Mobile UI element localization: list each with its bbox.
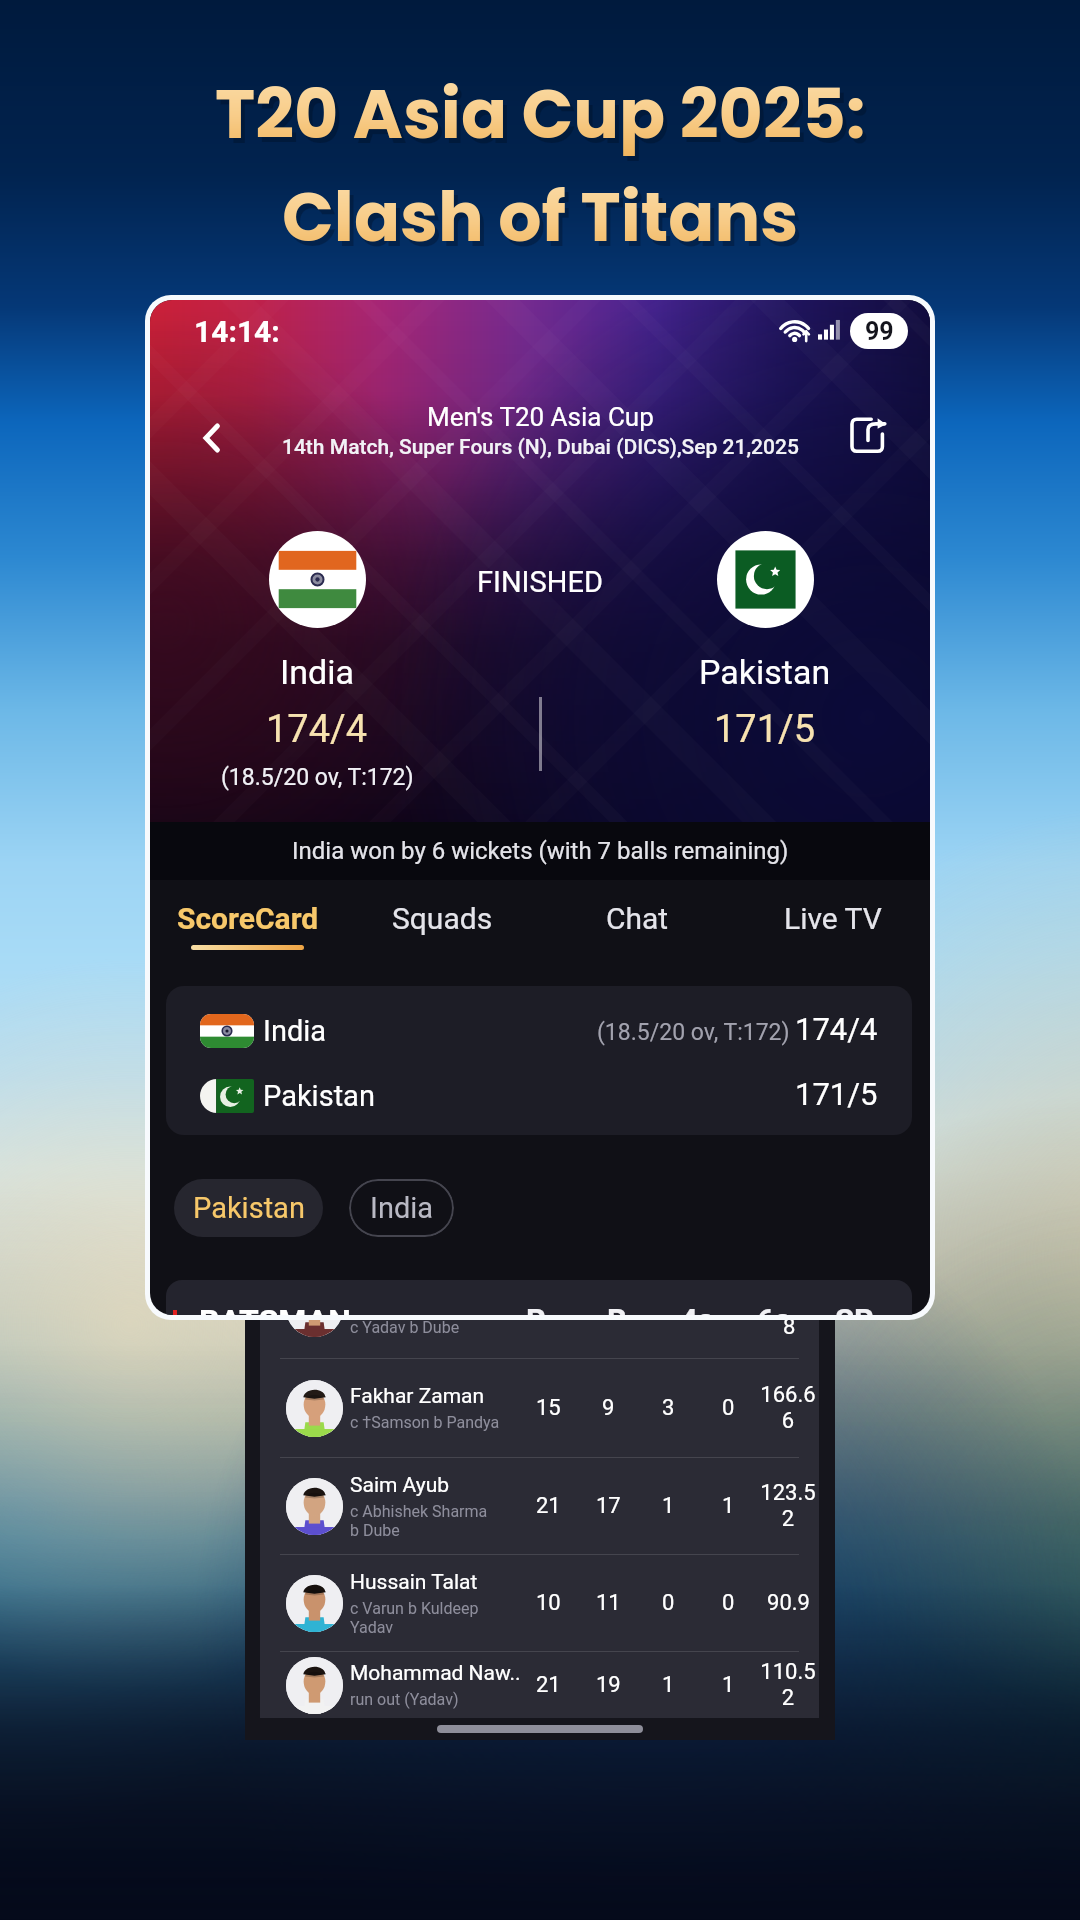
staticText: R xyxy=(526,1302,546,1315)
button[interactable]: Squads xyxy=(345,880,540,965)
button[interactable]: India xyxy=(349,1179,454,1237)
staticText: Hussain Talat xyxy=(350,1570,478,1595)
staticText: 0 xyxy=(722,1590,735,1616)
staticText: Saim Ayub xyxy=(350,1473,450,1498)
staticText: 174/4 xyxy=(795,1011,878,1047)
staticText: India xyxy=(280,652,354,692)
staticText: 171/5 xyxy=(795,1076,878,1112)
button[interactable]: Live TV xyxy=(735,880,930,965)
staticText: T20 Asia Cup 2025: xyxy=(215,67,866,162)
staticText: Live TV xyxy=(784,901,882,936)
staticText: Men's T20 Asia Cup xyxy=(427,402,654,432)
staticText: 110.52 xyxy=(756,1659,820,1711)
staticText: 14:14: xyxy=(194,314,280,349)
staticText: SR xyxy=(835,1302,874,1315)
button[interactable]: Back xyxy=(186,412,238,464)
staticText: 17 xyxy=(596,1493,621,1519)
staticText: 4s xyxy=(680,1302,714,1315)
staticText: 90.9 xyxy=(767,1590,810,1616)
staticText: 11 xyxy=(596,1590,621,1616)
staticText: (18.5/20 ov, T:172) xyxy=(221,764,414,791)
staticText: India xyxy=(263,1014,327,1048)
staticText: Pakistan xyxy=(263,1079,375,1113)
button[interactable]: India xyxy=(166,986,912,1135)
staticText: Squads xyxy=(392,901,493,936)
staticText: 174/4 xyxy=(266,707,368,752)
staticText: FINISHED xyxy=(477,565,603,599)
button[interactable]: Pakistan xyxy=(174,1179,323,1237)
staticText: BATSMAN xyxy=(199,1302,351,1315)
button[interactable]: ScoreCard xyxy=(150,880,345,965)
button[interactable]: Share xyxy=(840,408,896,464)
staticText: T20 Asia Cup 2025: xyxy=(219,72,870,167)
staticText: Pakistan xyxy=(699,652,831,692)
staticText: 1 xyxy=(662,1493,675,1519)
staticText: Clash of Titans xyxy=(282,170,799,265)
staticText: (18.5/20 ov, T:172) xyxy=(597,1019,790,1046)
staticText: 14th Match, Super Fours (N), Dubai (DICS… xyxy=(282,435,799,460)
staticText: 3 xyxy=(662,1395,675,1421)
staticText: 19 xyxy=(596,1672,621,1698)
staticText: 123.52 xyxy=(756,1480,820,1532)
staticText: 1 xyxy=(662,1672,675,1698)
staticText: ScoreCard xyxy=(177,901,319,936)
staticText: 0 xyxy=(722,1395,735,1421)
staticText: B xyxy=(607,1302,627,1315)
staticText: 10 xyxy=(536,1590,561,1616)
button[interactable]: Chat xyxy=(540,880,735,965)
staticText: 21 xyxy=(536,1493,561,1519)
staticText: Pakistan xyxy=(193,1191,305,1225)
staticText: Mohammad Naw.. xyxy=(350,1661,521,1686)
staticText: 1 xyxy=(722,1672,735,1698)
staticText: India xyxy=(370,1191,434,1225)
staticText: c †Samson b Pandya xyxy=(350,1413,500,1432)
staticText: c Abhishek Sharma b Dube xyxy=(350,1502,500,1540)
staticText: c Varun b Kuldeep Yadav xyxy=(350,1599,500,1637)
staticText: c Yadav b Dube xyxy=(350,1318,460,1337)
staticText: 6s xyxy=(757,1302,791,1315)
staticText: 0 xyxy=(662,1590,675,1616)
staticText: 166.66 xyxy=(756,1382,820,1434)
staticText: 171/5 xyxy=(714,707,816,752)
staticText: Chat xyxy=(606,901,669,936)
staticText: 99 xyxy=(865,317,894,346)
staticText: India won by 6 wickets (with 7 balls rem… xyxy=(292,837,789,865)
staticText: run out (Yadav) xyxy=(350,1690,459,1709)
staticText: Clash of Titans xyxy=(286,175,803,270)
staticText: 21 xyxy=(536,1672,561,1698)
staticText: 15 xyxy=(536,1395,561,1421)
staticText: 9 xyxy=(602,1395,615,1421)
staticText: 8 xyxy=(783,1314,796,1340)
staticText: 1 xyxy=(722,1493,735,1519)
staticText: Fakhar Zaman xyxy=(350,1384,485,1409)
